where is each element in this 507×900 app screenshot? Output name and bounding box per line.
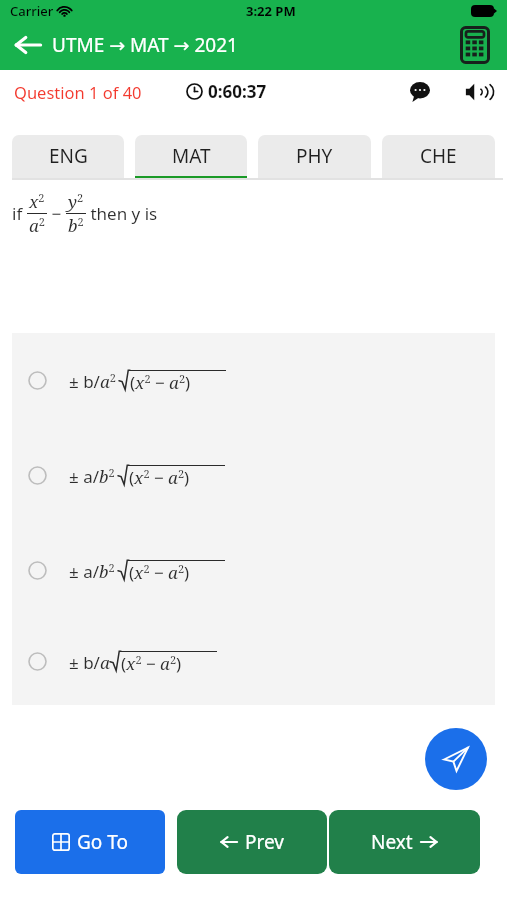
staticText: (x2 − a2) — [121, 652, 182, 675]
button[interactable]: ENG — [12, 135, 124, 180]
button[interactable]: Prev — [177, 810, 327, 874]
button[interactable]: MAT — [135, 135, 247, 180]
staticText: a2 — [29, 214, 45, 237]
staticText: ± b/a2 — [69, 370, 116, 393]
staticText: (x2 − a2) — [129, 561, 190, 584]
button[interactable]: Comments — [403, 75, 437, 109]
button[interactable]: CHE — [382, 135, 495, 180]
button[interactable]: Submit — [425, 728, 487, 790]
button[interactable]: Go To — [15, 810, 165, 874]
staticText: x2 — [29, 190, 45, 213]
staticText: UTME → MAT → 2021 — [52, 32, 238, 58]
staticText: 0:60:37 — [208, 80, 267, 103]
button[interactable]: Read aloud — [459, 75, 493, 109]
staticText: CHE — [420, 143, 457, 169]
staticText: Question 1 of 40 — [14, 81, 142, 103]
staticText: Go To — [77, 829, 128, 855]
staticText: then y is — [86, 202, 158, 225]
staticText: Carrier — [10, 2, 54, 20]
staticText: 3:22 PM — [246, 2, 296, 20]
button[interactable]: ± b/a2 — [12, 333, 495, 428]
staticText: (x2 − a2) — [130, 371, 191, 394]
staticText: Prev — [245, 829, 284, 855]
staticText: if — [12, 202, 27, 225]
staticText: − — [47, 202, 66, 225]
staticText: ENG — [49, 143, 88, 169]
staticText: ± a/b2 — [69, 560, 115, 583]
button[interactable]: Next — [329, 810, 480, 874]
staticText: ± a/b2 — [69, 465, 115, 488]
button[interactable]: Calculator — [453, 24, 497, 66]
staticText: PHY — [296, 143, 333, 169]
staticText: y2 — [68, 190, 84, 213]
staticText: (x2 − a2) — [129, 466, 190, 489]
staticText: Next — [371, 829, 413, 855]
button[interactable]: ± a/b2 — [12, 428, 495, 523]
button[interactable]: PHY — [258, 135, 371, 180]
button[interactable]: ± b/a — [12, 618, 495, 705]
staticText: MAT — [172, 143, 211, 169]
button[interactable]: ± a/b2 — [12, 523, 495, 618]
staticText: b2 — [68, 214, 84, 237]
button[interactable]: Back — [8, 25, 48, 65]
staticText: ± b/a — [69, 651, 110, 674]
